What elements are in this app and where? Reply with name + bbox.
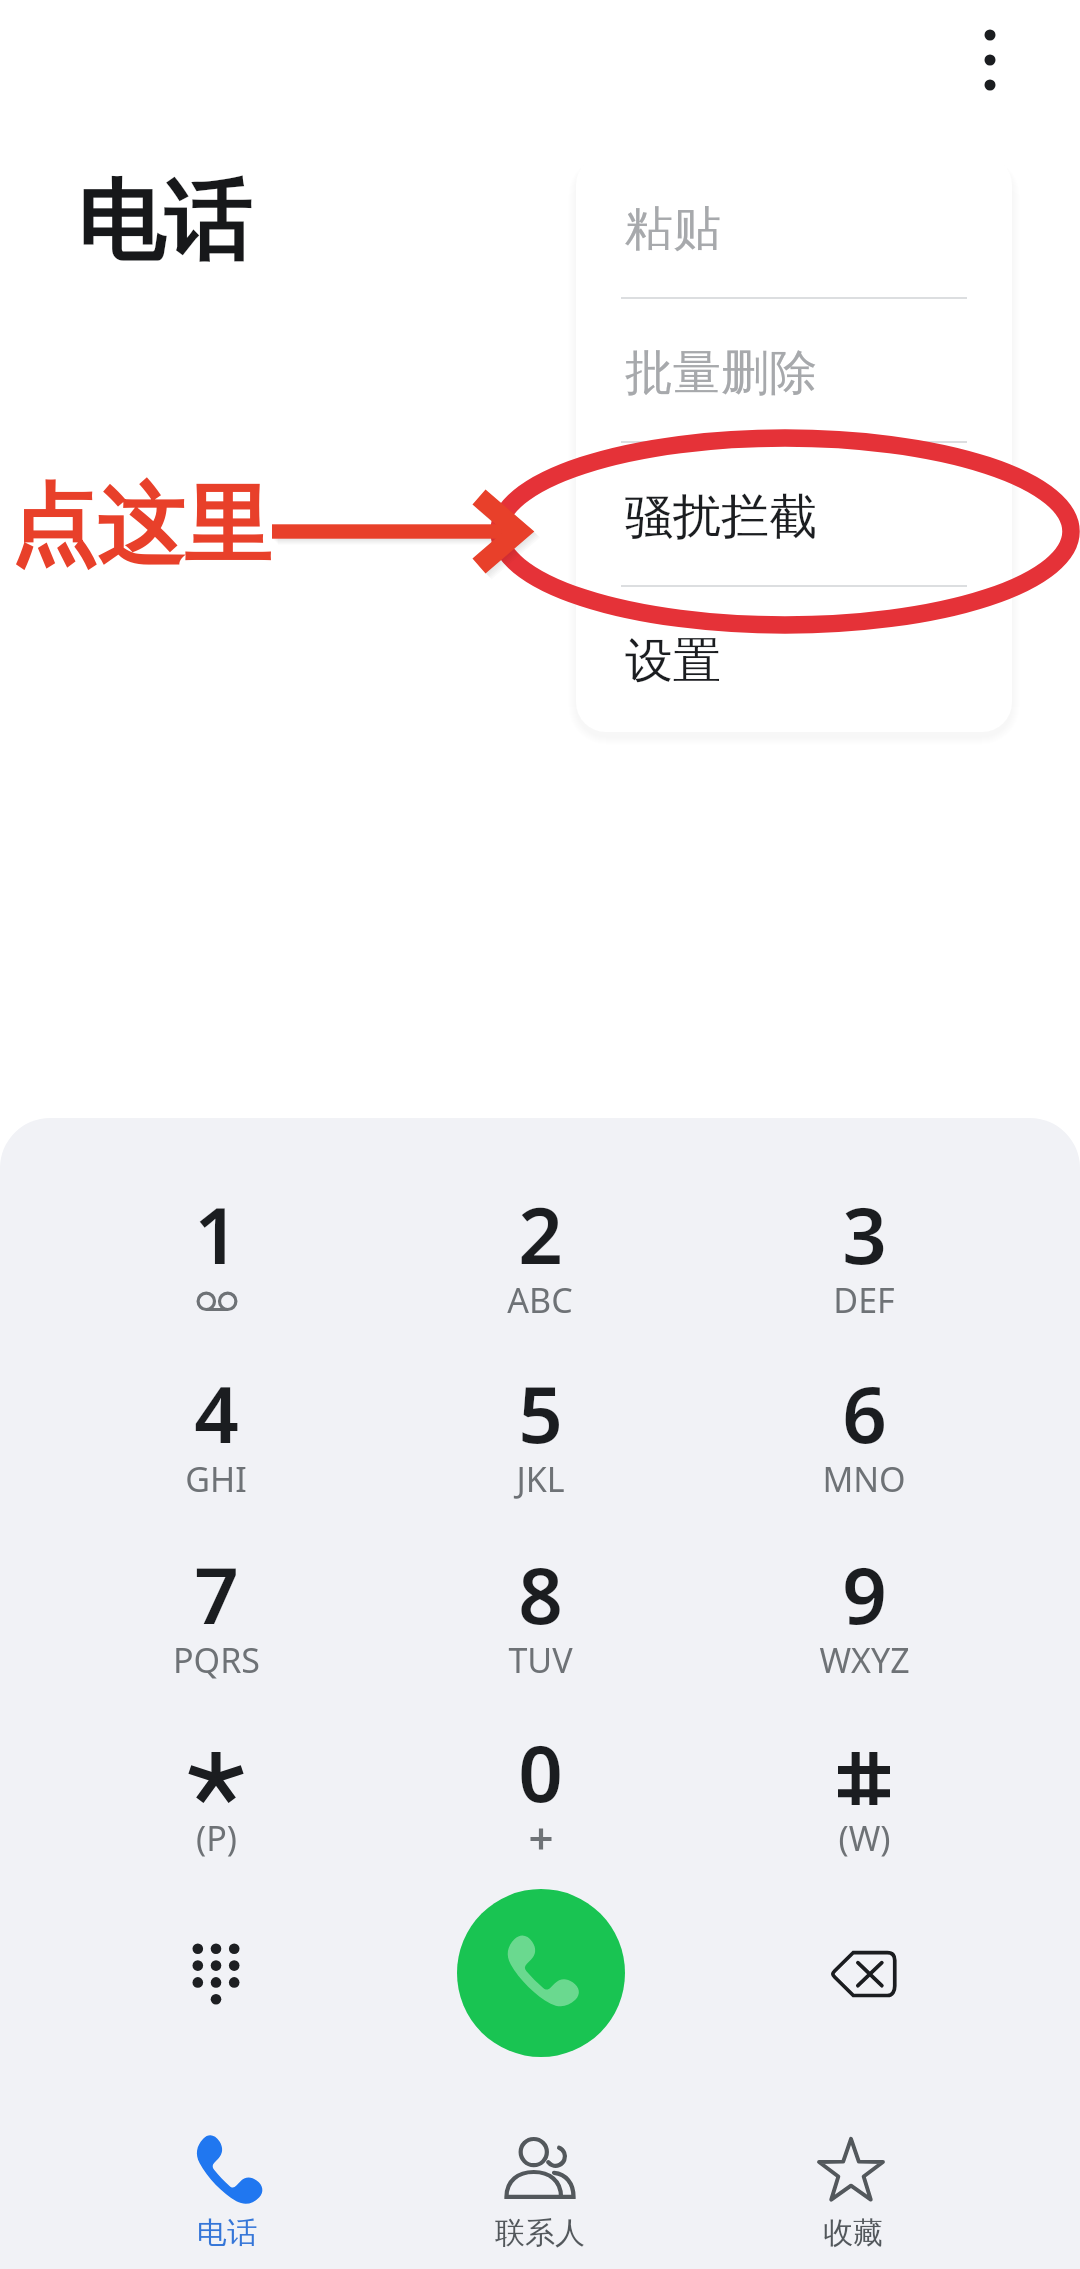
staticText: 联系人 [495, 2214, 585, 2252]
staticText: 6 [842, 1360, 887, 1466]
button[interactable]: 设置 [576, 587, 1012, 731]
button[interactable]: Hide keypad [146, 1904, 286, 2044]
button[interactable]: Backspace [794, 1904, 934, 2044]
staticText: JKL [516, 1456, 565, 1502]
button[interactable]: 1 [106, 1181, 326, 1346]
button[interactable]: 7 [106, 1541, 326, 1706]
staticText: 2 [518, 1181, 563, 1287]
button[interactable]: 联系人 [390, 2103, 690, 2269]
staticText: 批量删除 [625, 343, 817, 403]
staticText: 设置 [625, 631, 721, 691]
button[interactable]: (W) [754, 1719, 974, 1884]
staticText: 点这里 [10, 471, 271, 581]
button[interactable]: (P) [106, 1719, 326, 1884]
button[interactable]: 骚扰拦截 [576, 443, 1012, 587]
staticText: 9 [842, 1541, 887, 1647]
staticText: GHI [185, 1456, 247, 1502]
button[interactable]: 4 [106, 1360, 326, 1525]
button[interactable]: 5 [430, 1360, 650, 1525]
staticText: ABC [507, 1277, 573, 1323]
staticText: TUV [508, 1637, 573, 1683]
button[interactable]: 粘贴 [576, 155, 1012, 299]
staticText: 3 [842, 1181, 887, 1287]
button[interactable]: 0 [430, 1719, 650, 1884]
button[interactable]: 收藏 [703, 2103, 1003, 2269]
staticText: (P) [196, 1815, 237, 1861]
staticText: 粘贴 [625, 199, 721, 259]
button[interactable]: 批量删除 [576, 299, 1012, 443]
button[interactable]: 2 [430, 1181, 650, 1346]
button[interactable]: 6 [754, 1360, 974, 1525]
staticText: PQRS [173, 1637, 260, 1683]
staticText: 电话 [197, 2214, 257, 2252]
staticText: 0 [518, 1719, 563, 1825]
button[interactable]: Call [457, 1889, 625, 2057]
button[interactable]: 8 [430, 1541, 650, 1706]
staticText: 1 [194, 1181, 239, 1287]
staticText: 7 [194, 1541, 239, 1647]
button[interactable]: 电话 [77, 2103, 377, 2269]
button[interactable]: 9 [754, 1541, 974, 1706]
staticText: 8 [518, 1541, 563, 1647]
staticText: 电话 [77, 167, 251, 277]
staticText: DEF [833, 1277, 895, 1323]
button[interactable]: More options [940, 0, 1040, 120]
staticText: (W) [838, 1815, 891, 1861]
button[interactable]: 3 [754, 1181, 974, 1346]
staticText: WXYZ [819, 1637, 910, 1683]
staticText: 收藏 [823, 2214, 883, 2252]
staticText: 4 [194, 1360, 239, 1466]
staticText: 骚扰拦截 [625, 487, 817, 547]
staticText: MNO [822, 1456, 906, 1502]
staticText: 5 [518, 1360, 563, 1466]
